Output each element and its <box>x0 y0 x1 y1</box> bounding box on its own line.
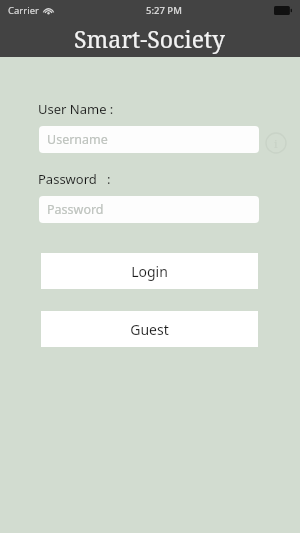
staticText: User Name : <box>38 100 114 118</box>
staticText: Smart-Society <box>74 23 226 54</box>
staticText: Password : <box>38 170 111 188</box>
button[interactable]: Password <box>39 196 259 223</box>
staticText: Carrier <box>8 4 39 17</box>
staticText: Login <box>131 262 168 281</box>
staticText: Guest <box>130 320 169 339</box>
staticText: 5:27 PM <box>146 4 182 17</box>
button[interactable]: Username <box>39 126 259 153</box>
staticText: i <box>274 136 278 151</box>
staticText: Password <box>47 201 104 218</box>
staticText: Username <box>47 131 108 148</box>
button[interactable]: Login <box>41 253 258 289</box>
button[interactable]: Guest <box>41 311 258 347</box>
